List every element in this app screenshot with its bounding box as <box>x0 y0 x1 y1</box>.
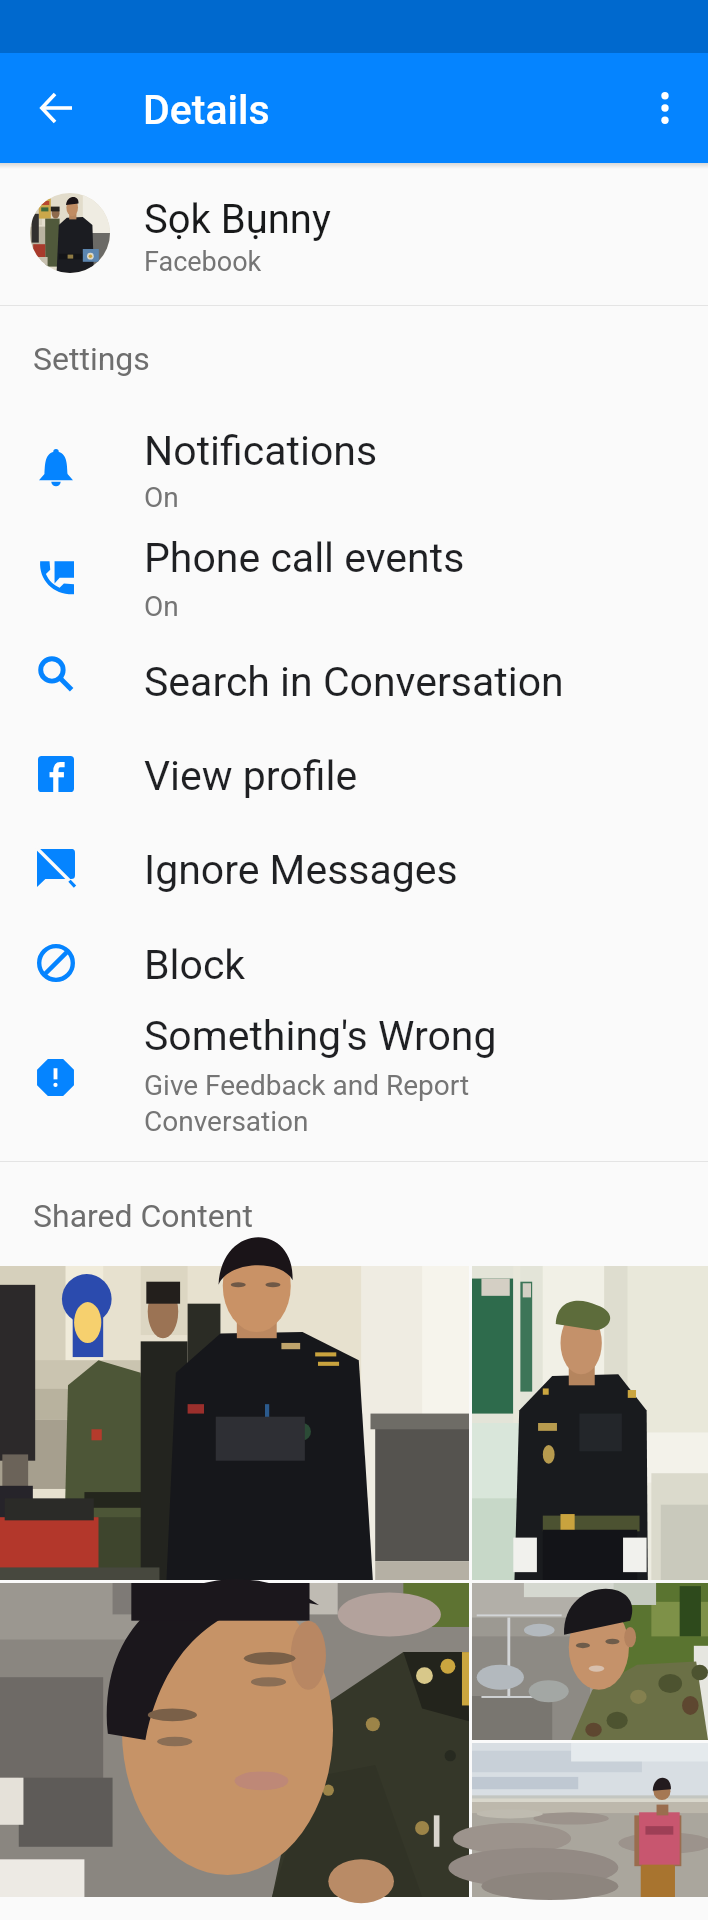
staticText: On <box>144 590 179 623</box>
staticText: View profile <box>144 752 358 800</box>
button[interactable]: More options <box>622 53 708 163</box>
staticText: Sọk Bụnny <box>144 196 331 243</box>
staticText: Search in Conversation <box>144 658 564 706</box>
button[interactable]: Sọk Bụnny <box>0 164 708 306</box>
button[interactable]: Notifications <box>0 306 708 517</box>
button[interactable]: Phone call events <box>0 517 708 630</box>
button[interactable]: Back <box>0 53 111 163</box>
staticText: Notifications <box>144 427 378 475</box>
button[interactable]: Block <box>0 912 708 1006</box>
staticText: Give Feedback and Report <box>144 1069 470 1102</box>
staticText: Settings <box>33 340 150 378</box>
staticText: On <box>144 481 179 514</box>
staticText: Facebook <box>144 246 262 278</box>
button[interactable]: View profile <box>0 724 708 818</box>
staticText: Phone call events <box>144 534 465 582</box>
staticText: Ignore Messages <box>144 846 458 894</box>
staticText: Block <box>144 941 246 989</box>
staticText: Details <box>143 86 270 134</box>
staticText: Shared Content <box>33 1197 253 1235</box>
button[interactable]: Something's Wrong <box>0 1006 708 1161</box>
button[interactable]: Ignore Messages <box>0 818 708 912</box>
button[interactable]: Search in Conversation <box>0 630 708 724</box>
staticText: Something's Wrong <box>144 1012 497 1060</box>
staticText: Conversation <box>144 1105 309 1138</box>
